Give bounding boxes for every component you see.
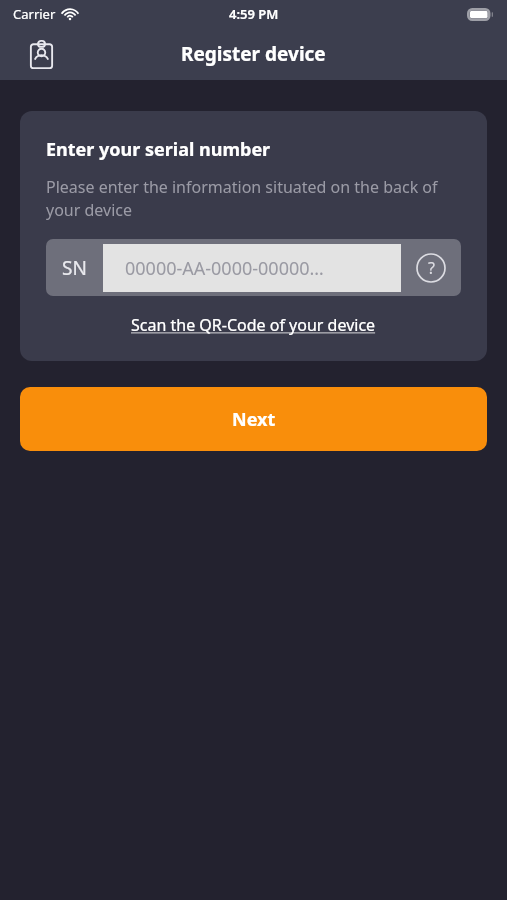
button[interactable]: Next xyxy=(20,387,487,451)
staticText: Scan the QR-Code of your device xyxy=(131,314,376,336)
staticText: Next xyxy=(232,407,276,432)
staticText: 4:59 PM xyxy=(229,5,279,23)
staticText: 00000-AA-0000-00000… xyxy=(125,256,324,281)
staticText: ? xyxy=(428,257,435,279)
staticText: Please enter the information situated on… xyxy=(46,176,461,221)
staticText: Carrier xyxy=(13,5,56,23)
button[interactable]: 00000-AA-0000-00000… xyxy=(103,244,401,292)
button[interactable]: Scan the QR-Code of your device xyxy=(125,311,382,339)
staticText: Enter your serial number xyxy=(46,137,271,162)
staticText: SN xyxy=(62,255,87,281)
staticText: Register device xyxy=(181,41,326,67)
button[interactable]: Help xyxy=(401,239,461,296)
button[interactable]: Profile xyxy=(20,33,62,75)
